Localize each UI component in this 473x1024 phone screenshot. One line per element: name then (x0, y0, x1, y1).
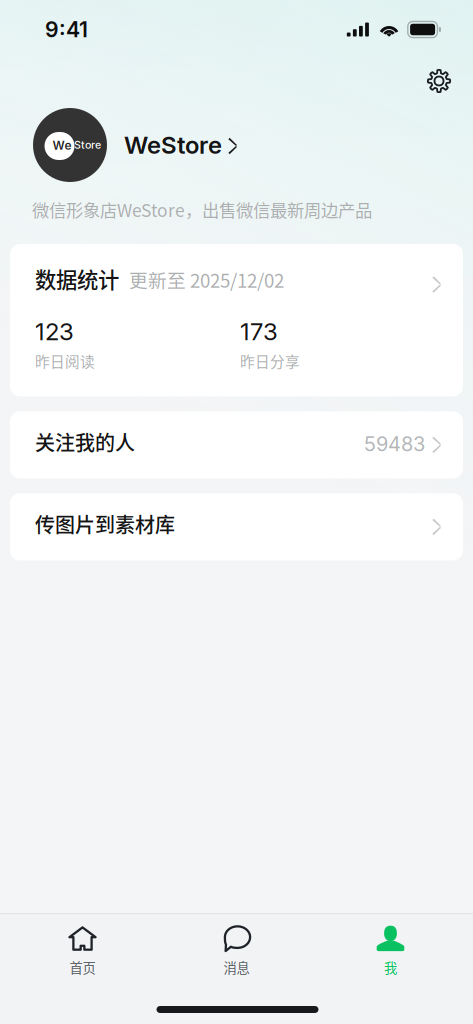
staticText: 数据统计 (35, 263, 119, 294)
staticText: 关注我的人 (35, 427, 135, 456)
staticText: 173 (240, 317, 278, 346)
button[interactable]: 消息 (159, 914, 313, 981)
button[interactable]: 首页 (5, 914, 159, 981)
staticText: 59483 (364, 432, 425, 456)
staticText: 消息 (223, 957, 249, 977)
button[interactable]: 我 (313, 914, 467, 981)
staticText: 传图片到素材库 (35, 509, 175, 538)
staticText: We (52, 138, 71, 152)
button[interactable]: We (0, 108, 473, 182)
staticText: 昨日阅读 (35, 350, 95, 371)
staticText: 更新至 2025/12/02 (129, 266, 284, 293)
staticText: WeStore (124, 130, 222, 159)
staticText: 首页 (69, 957, 95, 977)
staticText: 9:41 (45, 17, 88, 42)
button[interactable]: Settings (417, 59, 461, 103)
staticText: 微信形象店WeStore，出售微信最新周边产品 (32, 197, 372, 222)
staticText: 123 (35, 317, 74, 346)
button[interactable]: 传图片到素材库 (10, 493, 463, 560)
staticText: 昨日分享 (240, 350, 300, 371)
staticText: Store (74, 138, 101, 151)
staticText: 我 (384, 957, 397, 977)
button[interactable]: 关注我的人 (10, 411, 463, 478)
button[interactable]: 数据统计 (10, 244, 463, 396)
